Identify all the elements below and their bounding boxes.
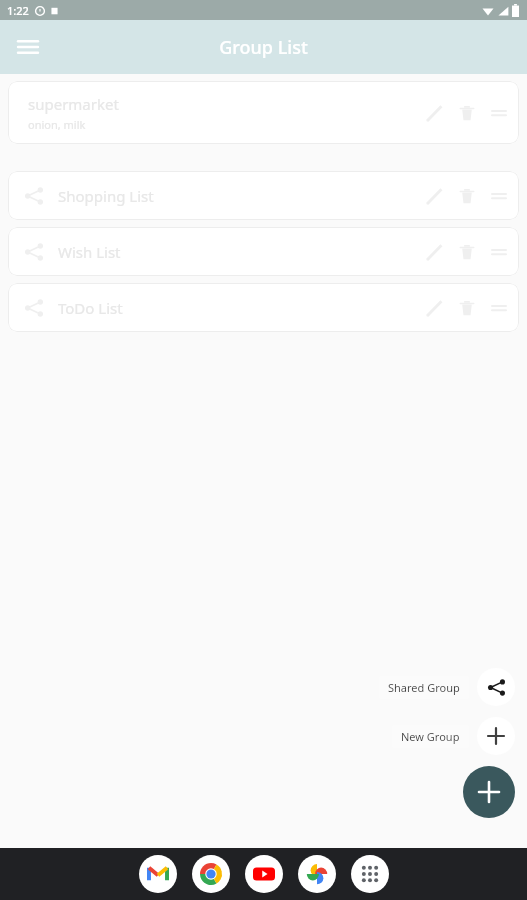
button[interactable]: YouTube (245, 855, 283, 893)
staticText: onion, milk (28, 117, 86, 132)
button[interactable]: Shared group (20, 238, 48, 266)
button[interactable]: All apps (351, 855, 389, 893)
button[interactable]: Chrome (192, 855, 230, 893)
staticText: Group List (219, 35, 308, 60)
staticText: Shopping List (58, 186, 154, 206)
button[interactable]: supermarket (8, 81, 519, 144)
button[interactable]: Reorder (483, 180, 515, 212)
button[interactable]: Open navigation menu (8, 27, 48, 67)
button[interactable]: Delete (451, 292, 483, 324)
button[interactable]: Add group (463, 766, 515, 818)
button[interactable]: Edit (417, 235, 451, 269)
staticText: Shared Group (388, 680, 460, 695)
button[interactable]: Reorder (483, 97, 515, 129)
button[interactable]: Edit (417, 96, 451, 130)
staticText: 1:22 (7, 3, 29, 18)
button[interactable]: Delete (451, 97, 483, 129)
button[interactable]: Reorder (483, 236, 515, 268)
button[interactable]: Shared group (8, 171, 519, 220)
button[interactable]: Shared group (8, 283, 519, 332)
button[interactable]: New Group (392, 725, 469, 748)
button[interactable]: Shared group (8, 227, 519, 276)
button[interactable]: Edit (417, 291, 451, 325)
button[interactable]: Shared Group (379, 676, 469, 699)
button[interactable]: Delete (451, 236, 483, 268)
button[interactable]: New Group (477, 717, 515, 755)
button[interactable]: Delete (451, 180, 483, 212)
button[interactable]: Shared Group (477, 668, 515, 706)
button[interactable]: Gmail (139, 855, 177, 893)
button[interactable]: Photos (298, 855, 336, 893)
staticText: ToDo List (58, 298, 123, 318)
staticText: Wish List (58, 242, 121, 262)
staticText: New Group (401, 729, 460, 744)
button[interactable]: Edit (417, 179, 451, 213)
button[interactable]: Shared group (20, 182, 48, 210)
button[interactable]: Reorder (483, 292, 515, 324)
staticText: supermarket (28, 94, 119, 114)
button[interactable]: Shared group (20, 294, 48, 322)
